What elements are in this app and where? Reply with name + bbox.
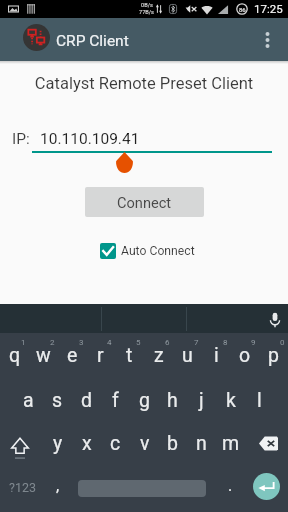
staticText: e — [67, 344, 78, 367]
button[interactable]: Shift — [0, 420, 42, 464]
button[interactable]: w — [29, 331, 58, 376]
staticText: v — [140, 432, 150, 455]
staticText: c — [110, 432, 121, 455]
staticText: Catalyst Remote Preset Client — [0, 74, 288, 93]
button[interactable]: n — [187, 420, 216, 464]
button[interactable]: Voice input — [261, 304, 288, 333]
staticText: p — [268, 344, 279, 367]
staticText: 2 — [50, 338, 55, 347]
button[interactable]: o — [230, 331, 259, 376]
button[interactable]: . — [214, 465, 246, 512]
staticText: y — [53, 432, 63, 455]
button[interactable]: l — [245, 376, 274, 420]
staticText: m — [222, 432, 240, 455]
staticText: j — [199, 389, 204, 412]
button[interactable]: Backspace — [245, 420, 288, 464]
staticText: CRP Client — [56, 32, 129, 50]
staticText: 17:25 — [254, 2, 283, 15]
staticText: u — [182, 344, 193, 367]
button[interactable]: k — [216, 376, 245, 420]
staticText: g — [139, 389, 150, 412]
staticText: l — [257, 389, 262, 412]
button[interactable]: h — [158, 376, 187, 420]
staticText: f — [112, 389, 119, 412]
button[interactable]: g — [130, 376, 159, 420]
button[interactable]: s — [43, 376, 72, 420]
staticText: h — [167, 389, 178, 412]
staticText: q — [9, 344, 21, 367]
button[interactable]: , — [45, 465, 70, 512]
button[interactable]: f — [101, 376, 130, 420]
staticText: d — [81, 389, 92, 412]
button[interactable]: e — [58, 331, 87, 376]
button[interactable]: Space — [70, 465, 214, 512]
staticText: 8 — [223, 338, 228, 347]
button[interactable]: v — [130, 420, 159, 464]
button[interactable]: t — [115, 331, 144, 376]
button[interactable]: r — [86, 331, 115, 376]
staticText: z — [154, 344, 164, 367]
button[interactable]: ?123 — [0, 465, 45, 512]
staticText: o — [239, 344, 251, 367]
button[interactable]: c — [101, 420, 130, 464]
button[interactable]: m — [216, 420, 245, 464]
staticText: Connect — [117, 194, 172, 211]
staticText: 7 — [194, 338, 199, 347]
button[interactable]: Connect — [85, 187, 204, 217]
staticText: 4 — [107, 338, 112, 347]
button[interactable]: i — [202, 331, 231, 376]
staticText: t — [126, 344, 133, 367]
button[interactable]: d — [72, 376, 101, 420]
staticText: 0 — [280, 338, 285, 347]
staticText: 0B/s — [141, 2, 153, 9]
staticText: 1 — [21, 338, 26, 347]
staticText: s — [52, 389, 63, 412]
staticText: 5 — [136, 338, 141, 347]
staticText: i — [214, 344, 219, 367]
button[interactable]: q — [0, 331, 29, 376]
staticText: r — [97, 344, 104, 367]
staticText: 6 — [165, 338, 170, 347]
button[interactable]: Auto Connect — [100, 243, 195, 259]
staticText: a — [23, 389, 34, 412]
button[interactable]: More options — [252, 18, 288, 61]
staticText: 10.110.109.41 — [40, 130, 140, 148]
staticText: . — [228, 476, 233, 495]
staticText: , — [56, 476, 60, 495]
staticText: 77B/s — [139, 9, 154, 16]
button[interactable]: z — [144, 331, 173, 376]
button[interactable]: b — [158, 420, 187, 464]
button[interactable]: y — [43, 420, 72, 464]
staticText: x — [82, 432, 92, 455]
button[interactable]: j — [187, 376, 216, 420]
button[interactable]: u — [173, 331, 202, 376]
staticText: ?123 — [9, 480, 36, 495]
staticText: k — [226, 389, 236, 412]
button[interactable]: a — [14, 376, 43, 420]
staticText: w — [36, 344, 51, 367]
staticText: 86 — [239, 6, 246, 13]
staticText: 9 — [251, 338, 256, 347]
staticText: n — [196, 432, 207, 455]
button[interactable]: x — [72, 420, 101, 464]
staticText: IP: — [12, 130, 30, 148]
staticText: 3 — [79, 338, 84, 347]
staticText: Auto Connect — [121, 244, 195, 258]
button[interactable]: Enter — [246, 465, 288, 512]
button[interactable]: p — [259, 331, 288, 376]
staticText: b — [167, 432, 178, 455]
